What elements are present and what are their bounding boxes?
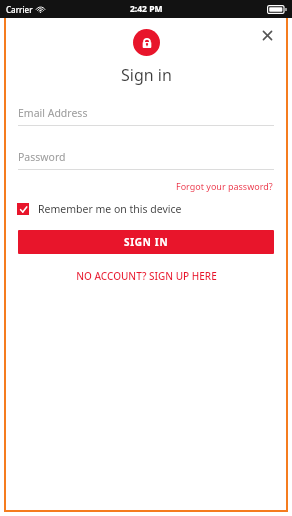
- button[interactable]: NO ACCOUNT? SIGN UP HERE: [72, 267, 221, 285]
- staticText: Password: [18, 150, 66, 164]
- button[interactable]: Remember me on this device: [6, 200, 286, 218]
- staticText: Remember me on this device: [38, 202, 182, 216]
- staticText: Forgot your password?: [176, 180, 273, 192]
- staticText: Sign in: [121, 64, 172, 86]
- staticText: NO ACCOUNT? SIGN UP HERE: [76, 269, 217, 283]
- staticText: 2:42 PM: [130, 3, 163, 15]
- staticText: SIGN IN: [124, 235, 169, 249]
- button[interactable]: Forgot your password?: [174, 179, 275, 193]
- staticText: Email Address: [18, 106, 88, 120]
- button[interactable]: Email Address: [18, 106, 274, 126]
- button[interactable]: Password: [18, 150, 274, 170]
- button[interactable]: Close: [256, 24, 278, 46]
- staticText: Carrier: [6, 4, 33, 15]
- button[interactable]: SIGN IN: [18, 230, 274, 254]
